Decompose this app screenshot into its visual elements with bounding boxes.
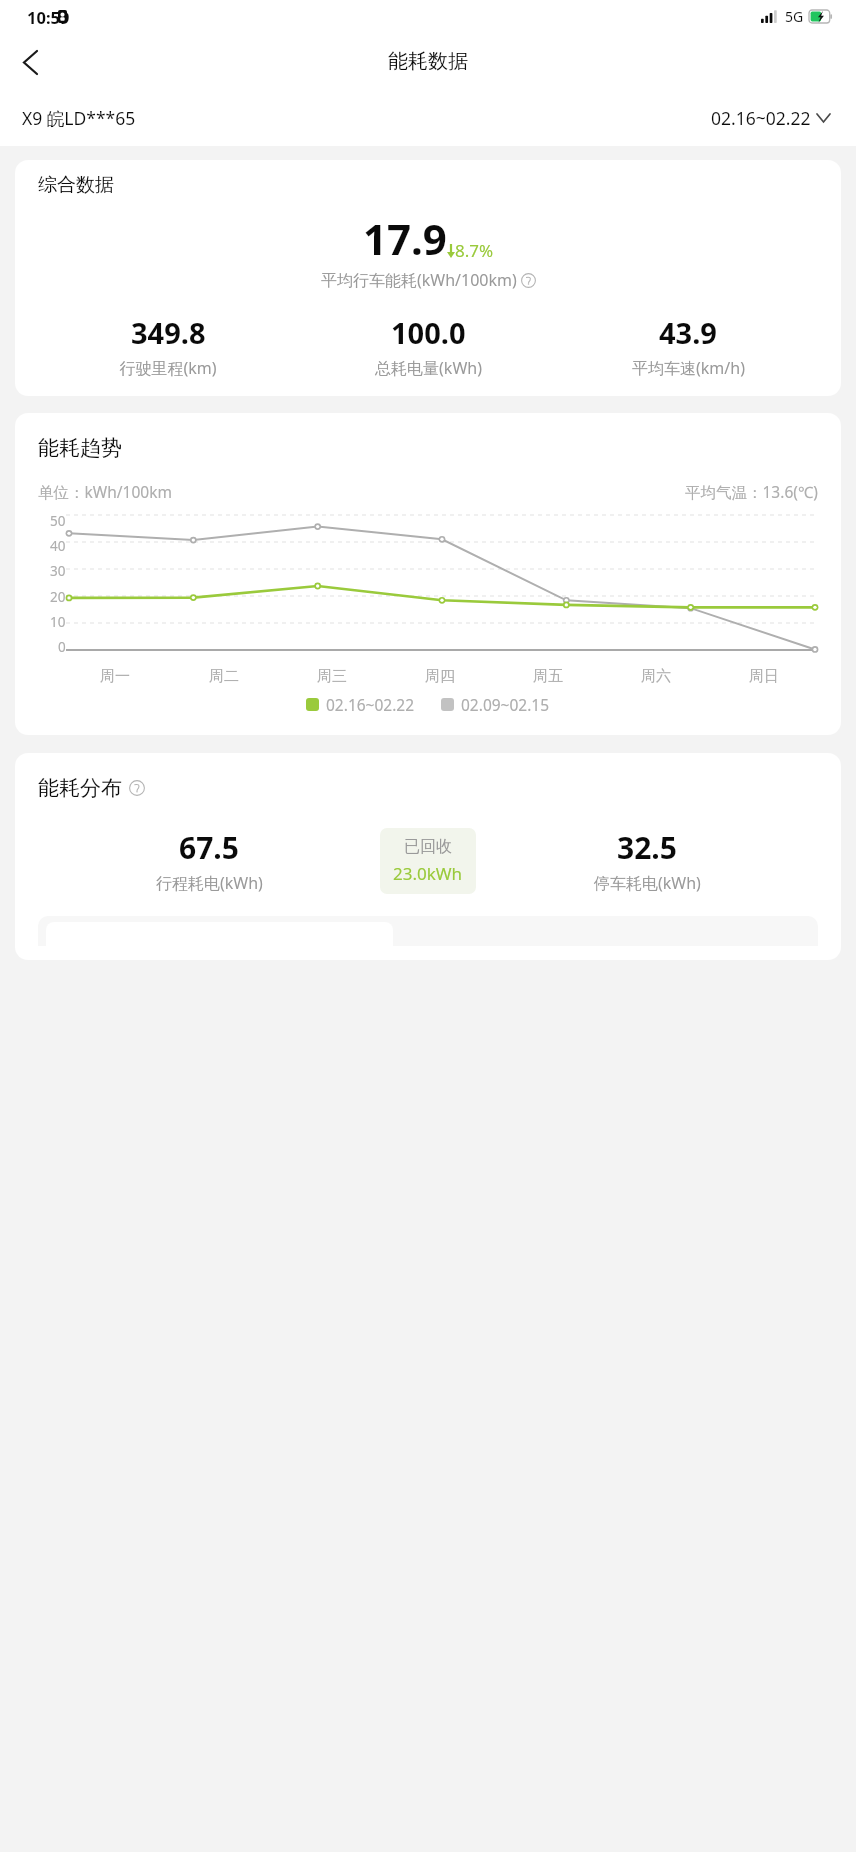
staticText: 5G: [785, 7, 804, 26]
staticText: 40: [50, 537, 66, 555]
staticText: 周二: [209, 667, 239, 686]
staticText: X9 皖LD***65: [22, 106, 136, 130]
staticText: 30: [50, 562, 66, 580]
staticText: 停车耗电(kWh): [594, 872, 701, 894]
staticText: 平均气温：13.6(℃): [685, 481, 818, 502]
staticText: 周四: [425, 667, 455, 686]
staticText: 能耗趋势: [38, 435, 122, 461]
staticText: 总耗电量(kWh): [375, 357, 482, 379]
staticText: 100.0: [391, 313, 466, 352]
staticText: 50: [50, 512, 66, 530]
staticText: 17.9: [363, 210, 447, 267]
staticText: 8.7%: [455, 239, 494, 262]
staticText: 20: [50, 588, 66, 606]
staticText: 周五: [533, 667, 563, 686]
staticText: 349.8: [131, 313, 206, 352]
button[interactable]: Back: [8, 40, 52, 84]
staticText: 23.0kWh: [393, 862, 463, 885]
staticText: 02.16~02.22: [711, 106, 811, 130]
staticText: 单位：kWh/100km: [38, 481, 172, 502]
staticText: 10:59: [27, 6, 70, 28]
staticText: 行驶里程(km): [119, 357, 217, 379]
staticText: 周一: [100, 667, 130, 686]
button[interactable]: 02.16~02.22: [707, 102, 834, 134]
staticText: 能耗分布: [38, 775, 122, 801]
staticText: 周六: [641, 667, 671, 686]
staticText: 综合数据: [38, 173, 114, 197]
staticText: 周三: [317, 667, 347, 686]
staticText: 平均车速(km/h): [632, 357, 745, 379]
staticText: 行程耗电(kWh): [156, 872, 263, 894]
staticText: 已回收: [404, 837, 452, 857]
staticText: 43.9: [659, 313, 717, 352]
staticText: 0: [58, 638, 66, 656]
staticText: 32.5: [617, 827, 677, 868]
staticText: 02.16~02.22: [326, 694, 415, 715]
staticText: 能耗数据: [388, 49, 468, 74]
staticText: 平均行车能耗(kWh/100km): [321, 269, 517, 291]
staticText: 周日: [749, 667, 779, 686]
staticText: 10: [50, 613, 66, 631]
staticText: 67.5: [179, 827, 239, 868]
staticText: 02.09~02.15: [461, 694, 550, 715]
